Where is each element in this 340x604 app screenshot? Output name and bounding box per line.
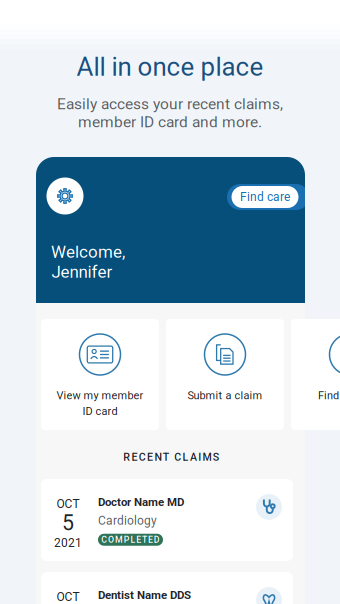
- staticText: member ID card and more.: [78, 113, 262, 131]
- staticText: OCT: [56, 497, 79, 511]
- button[interactable]: Settings: [46, 177, 83, 214]
- staticText: Easily access your recent claims,: [57, 95, 283, 113]
- staticText: All in once place: [76, 52, 263, 82]
- button[interactable]: OCT: [41, 572, 293, 604]
- staticText: Doctor Name MD: [98, 495, 184, 509]
- staticText: COMPLETED: [101, 535, 160, 545]
- staticText: 2021: [54, 536, 82, 550]
- staticText: OCT: [56, 590, 79, 604]
- button[interactable]: OCT: [41, 479, 293, 561]
- staticText: RECENT CLAIMS: [123, 451, 219, 463]
- staticText: Find care: [240, 190, 290, 204]
- staticText: 5: [62, 510, 74, 535]
- staticText: Submit a claim: [187, 389, 262, 402]
- staticText: ID card: [82, 405, 117, 418]
- staticText: Welcome,: [51, 242, 125, 262]
- button[interactable]: Find care: [227, 184, 309, 210]
- staticText: Dentist Name DDS: [98, 588, 191, 602]
- staticText: Cardiology: [98, 514, 157, 528]
- staticText: Find a doctor: [318, 389, 340, 402]
- button[interactable]: View my member: [41, 319, 159, 430]
- staticText: View my member: [56, 389, 143, 402]
- staticText: Jennifer: [51, 262, 112, 282]
- button[interactable]: Submit a claim: [166, 319, 284, 430]
- button[interactable]: Find a doctor: [291, 319, 340, 430]
